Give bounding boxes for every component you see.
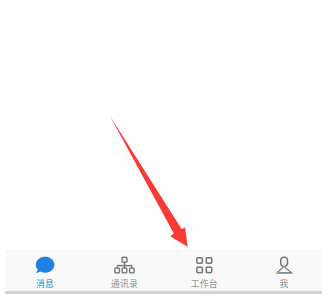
button[interactable]: 消息 <box>5 251 85 291</box>
staticText: 消息 <box>36 277 54 289</box>
staticText: 我 <box>280 277 289 289</box>
staticText: 工作台 <box>191 277 218 289</box>
staticText: 通讯录 <box>111 277 138 289</box>
button[interactable]: 通讯录 <box>85 251 164 291</box>
button[interactable]: 工作台 <box>164 251 244 291</box>
button[interactable]: 我 <box>244 251 322 291</box>
